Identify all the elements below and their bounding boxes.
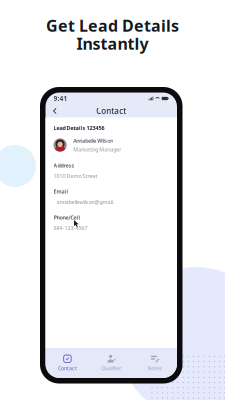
button[interactable]: Qualifier: [89, 352, 133, 374]
staticText: Qualifier: [101, 365, 121, 372]
staticText: Get Lead Details: [46, 15, 179, 36]
staticText: 1010 Demo Street: [53, 172, 97, 179]
staticText: Contact: [58, 365, 77, 372]
staticText: 9:41: [53, 94, 67, 103]
button[interactable]: Back: [49, 105, 61, 117]
staticText: 684-123-4567: [53, 224, 87, 232]
staticText: Notes: [148, 365, 163, 372]
staticText: Contact: [96, 106, 126, 116]
staticText: Marketing Manager: [73, 146, 121, 153]
staticText: Phone/Cell: [53, 214, 80, 221]
staticText: Instantly: [76, 33, 148, 54]
staticText: Address: [53, 162, 74, 169]
staticText: Lead Details 123456: [53, 124, 104, 132]
button[interactable]: Contact: [45, 352, 89, 374]
staticText: Annabelle Wilson: [73, 137, 113, 144]
staticText: annabellewilson@gmail.: [56, 198, 113, 205]
button[interactable]: Notes: [133, 352, 177, 374]
staticText: Email: [53, 188, 68, 195]
